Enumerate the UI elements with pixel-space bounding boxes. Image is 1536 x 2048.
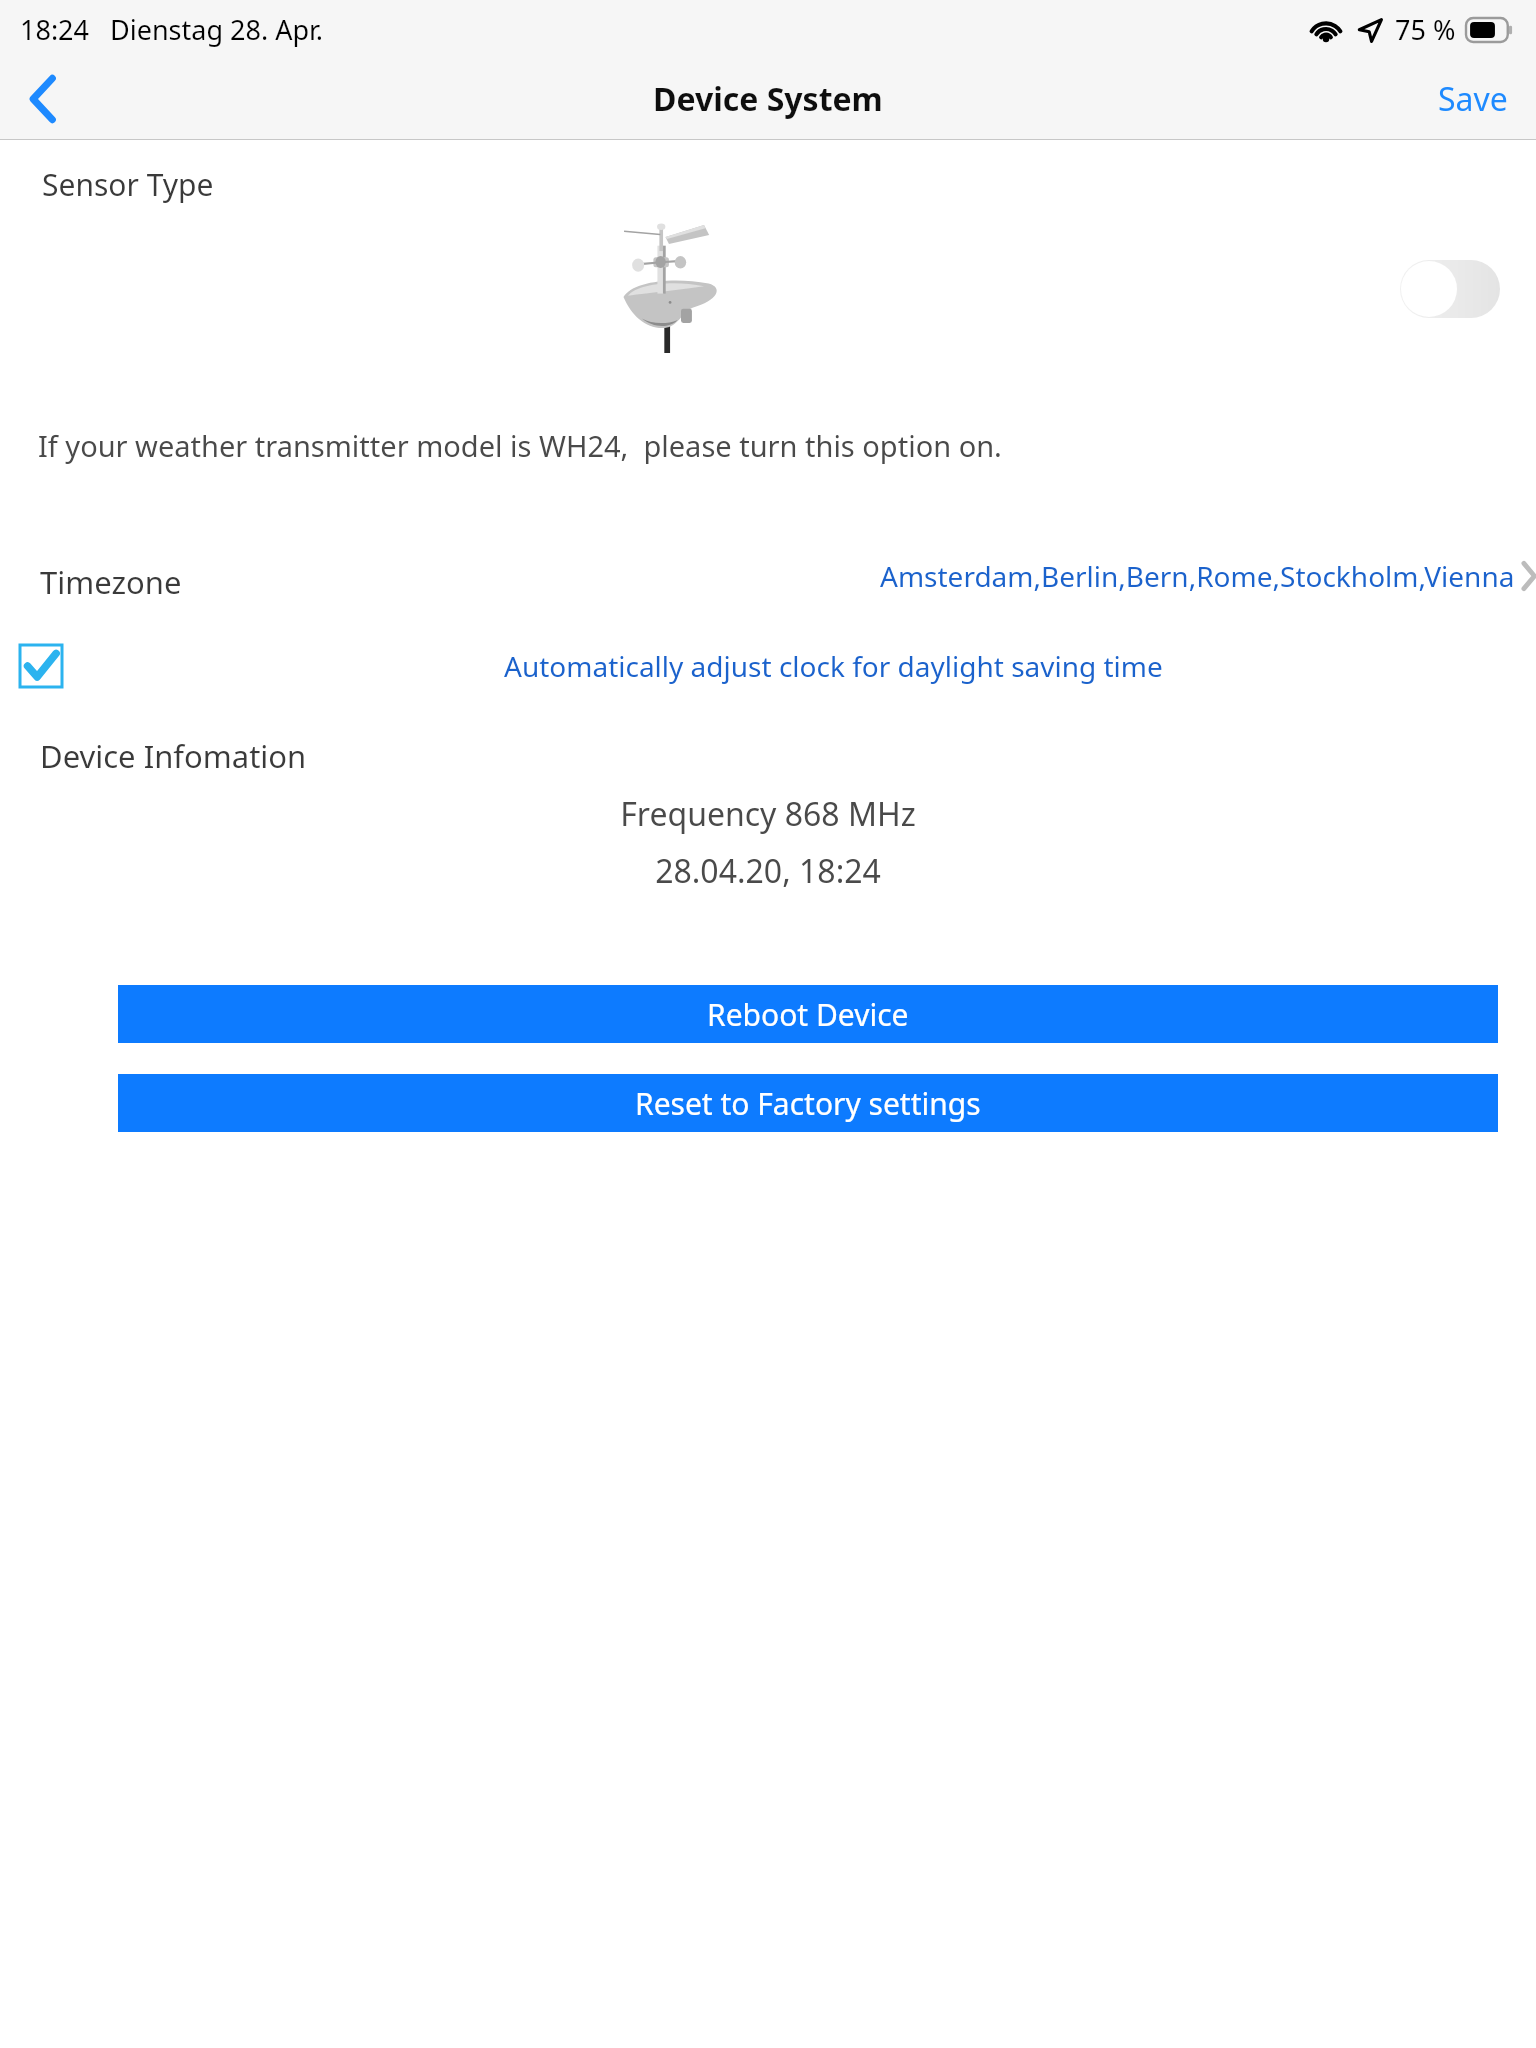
staticText: If your weather transmitter model is WH2…: [38, 426, 1002, 465]
staticText: Device Infomation: [40, 735, 307, 777]
button[interactable]: WH24 sensor type, off: [1400, 260, 1500, 318]
staticText: Reboot Device: [707, 994, 909, 1035]
button[interactable]: Back: [4, 60, 82, 138]
staticText: Save: [1438, 77, 1508, 121]
staticText: Frequency 868 MHz: [0, 792, 1536, 836]
staticText: Dienstag 28. Apr.: [110, 11, 324, 48]
staticText: Device System: [653, 77, 883, 121]
staticText: Reset to Factory settings: [635, 1083, 981, 1124]
staticText: Timezone: [40, 561, 182, 603]
staticText: 75 %: [1395, 11, 1456, 48]
button[interactable]: Reset to Factory settings: [118, 1074, 1498, 1132]
staticText: Automatically adjust clock for daylight …: [504, 647, 1163, 685]
button[interactable]: Automatically adjust clock for daylight …: [0, 630, 1536, 702]
staticText: 18:24: [20, 11, 90, 48]
button[interactable]: Save: [1410, 63, 1536, 135]
staticText: Amsterdam,Berlin,Bern,Rome,Stockholm,Vie…: [880, 557, 1515, 595]
button[interactable]: Amsterdam,Berlin,Bern,Rome,Stockholm,Vie…: [880, 557, 1536, 595]
staticText: 28.04.20, 18:24: [0, 849, 1536, 893]
button[interactable]: Reboot Device: [118, 985, 1498, 1043]
staticText: Sensor Type: [42, 164, 214, 205]
